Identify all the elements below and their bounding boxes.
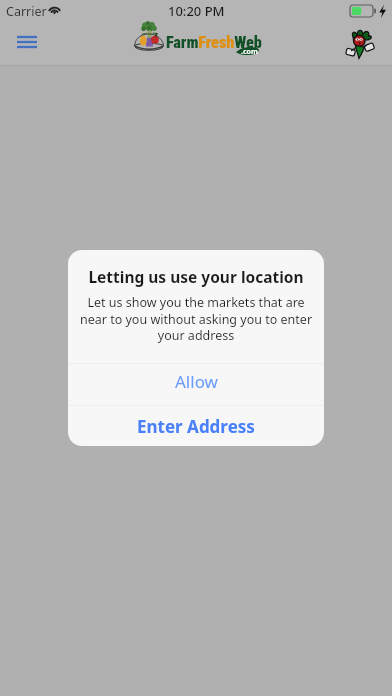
staticText: Enter Address [137, 415, 255, 438]
staticText: 10:20 PM [168, 2, 225, 20]
button[interactable]: Enter Address [68, 406, 324, 446]
button[interactable]: Menu [6, 21, 48, 61]
staticText: Letting us use your location [76, 266, 316, 287]
button[interactable]: Mascot [341, 24, 379, 62]
button[interactable]: Allow [68, 364, 324, 405]
staticText: .com [241, 47, 258, 57]
staticText: Let us show you the markets that are nea… [72, 294, 320, 344]
staticText: Carrier [6, 3, 47, 20]
staticText: Allow [175, 370, 218, 393]
staticText: FarmFreshWeb [166, 33, 262, 52]
